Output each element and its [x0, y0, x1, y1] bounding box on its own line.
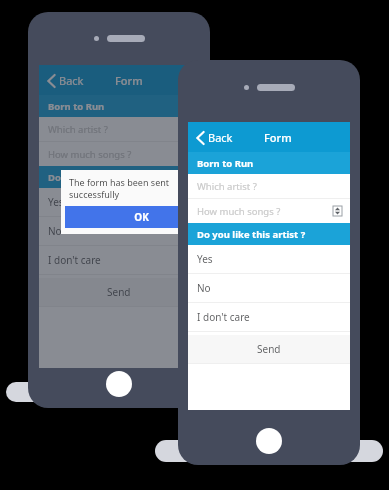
button[interactable]: No: [188, 274, 350, 302]
other: Stepper: [182, 149, 191, 159]
staticText: Yes: [48, 195, 64, 209]
staticText: Yes: [197, 252, 213, 266]
button[interactable]: Yes: [188, 245, 350, 273]
staticText: Send: [257, 342, 281, 356]
button[interactable]: Which artist ?: [39, 117, 199, 141]
staticText: Born to Run: [48, 100, 105, 113]
staticText: Back: [208, 130, 233, 145]
button[interactable]: Send: [39, 278, 199, 306]
button[interactable]: Back: [194, 126, 236, 149]
staticText: Do you like this artist ?: [48, 171, 157, 184]
button[interactable]: I don't care: [188, 303, 350, 331]
button[interactable]: How much songs ?: [39, 142, 199, 166]
staticText: I don't care: [48, 253, 101, 267]
button[interactable]: Send: [188, 335, 350, 363]
staticText: Send: [107, 285, 131, 299]
staticText: I don't care: [197, 310, 250, 324]
staticText: Form: [115, 73, 143, 88]
button[interactable]: Which artist ?: [188, 174, 350, 198]
other: Stepper: [333, 206, 342, 216]
button[interactable]: I don't care: [39, 246, 199, 274]
button[interactable]: How much songs ?: [188, 199, 350, 223]
button[interactable]: No: [39, 217, 199, 245]
staticText: How much songs ?: [48, 148, 132, 161]
staticText: Born to Run: [197, 157, 254, 170]
staticText: Which artist ?: [48, 123, 108, 136]
staticText: Form: [264, 130, 292, 145]
staticText: The form has been sent successfully: [69, 176, 210, 200]
staticText: How much songs ?: [197, 205, 281, 218]
staticText: Which artist ?: [197, 180, 257, 193]
staticText: Do you like this artist ?: [197, 228, 306, 241]
staticText: No: [48, 224, 62, 238]
button[interactable]: OK: [65, 206, 210, 228]
staticText: No: [197, 281, 211, 295]
button[interactable]: Yes: [39, 188, 199, 216]
staticText: OK: [134, 210, 149, 224]
button[interactable]: Back: [45, 69, 87, 92]
staticText: Back: [59, 73, 84, 88]
